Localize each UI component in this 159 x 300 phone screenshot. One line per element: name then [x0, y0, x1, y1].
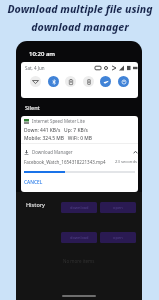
button[interactable]: Battery saver [65, 76, 76, 87]
button[interactable]: open [100, 202, 136, 213]
staticText: Down: 441 KB/s Up: 7 KB/s [24, 127, 88, 134]
staticText: History [26, 201, 45, 208]
staticText: 10:20 am [29, 50, 56, 58]
button[interactable]: download [61, 232, 97, 243]
staticText: download manager [31, 20, 129, 34]
staticText: open [113, 205, 123, 210]
staticText: Download multiple file using [7, 2, 153, 16]
button[interactable]: download [61, 202, 97, 213]
button[interactable]: CANCEL [24, 179, 43, 186]
staticText: Mobile: 324.5 MB WiFi: 0 MB [24, 135, 93, 142]
staticText: download [70, 235, 89, 240]
button[interactable]: Wi-Fi [30, 76, 41, 87]
button[interactable]: open [100, 232, 136, 243]
button[interactable]: Bluetooth [48, 76, 59, 87]
button[interactable]: Flashlight [83, 76, 94, 87]
staticText: Internet Speed Meter Lite [32, 118, 85, 124]
button[interactable]: Collapse notification [133, 150, 138, 155]
staticText: Sat, 4 Jun [25, 65, 45, 71]
staticText: open [113, 235, 123, 240]
button[interactable]: Auto rotate [118, 76, 129, 87]
staticText: No more items [63, 258, 95, 264]
staticText: 23 seconds [115, 159, 137, 165]
staticText: Download Manager [32, 149, 73, 155]
staticText: Facebook_Watch_1654318221343.mp4 [24, 159, 106, 165]
button[interactable]: Airplane mode [100, 76, 111, 87]
staticText: Silent [25, 104, 40, 111]
staticText: download [70, 205, 89, 210]
staticText: CANCEL [24, 179, 43, 186]
